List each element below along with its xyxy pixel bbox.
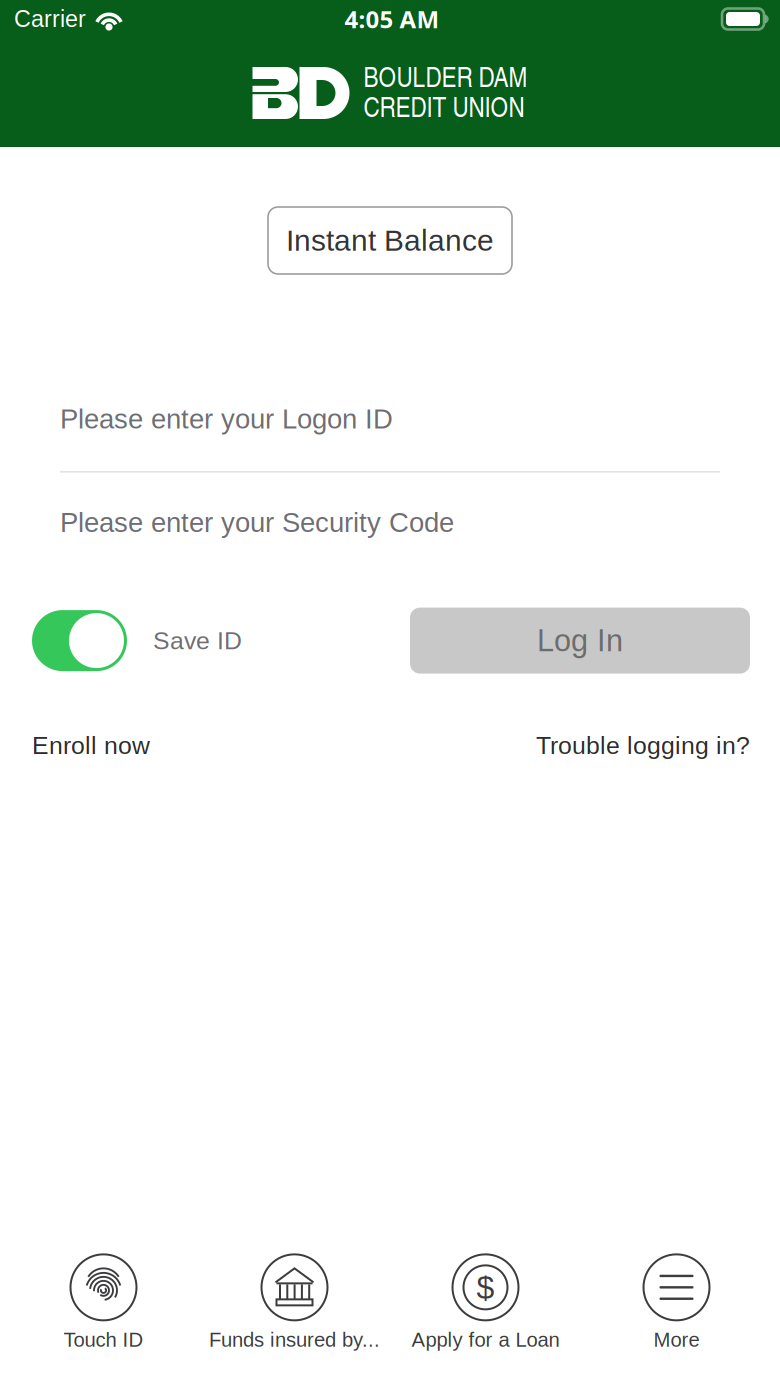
button[interactable]: Save ID (32, 610, 242, 671)
staticText: Trouble logging in? (536, 732, 750, 759)
staticText: More (653, 1328, 699, 1351)
staticText: Apply for a Loan (411, 1328, 559, 1351)
button[interactable]: Enroll now (32, 732, 150, 759)
button[interactable]: More (581, 1254, 772, 1351)
staticText: Enroll now (32, 732, 150, 759)
staticText: CREDIT UNION (363, 87, 524, 125)
button[interactable]: Trouble logging in? (536, 732, 750, 759)
staticText: Please enter your Logon ID (60, 404, 393, 434)
button[interactable]: Touch ID (8, 1254, 199, 1351)
staticText: BOULDER DAM (363, 57, 527, 95)
staticText: 4:05 AM (344, 3, 439, 35)
staticText: $ (476, 1269, 494, 1305)
staticText: Instant Balance (286, 224, 494, 257)
staticText: Funds insured by... (209, 1328, 380, 1351)
staticText: Save ID (153, 627, 242, 654)
button[interactable]: Log In (410, 608, 750, 674)
staticText: Please enter your Security Code (60, 507, 454, 538)
button[interactable]: $ (390, 1254, 581, 1351)
staticText: Carrier (14, 6, 86, 32)
button[interactable]: Instant Balance (268, 207, 512, 274)
staticText: Log In (537, 623, 623, 658)
button[interactable]: Funds insured by... (199, 1254, 390, 1351)
staticText: Touch ID (63, 1328, 143, 1351)
